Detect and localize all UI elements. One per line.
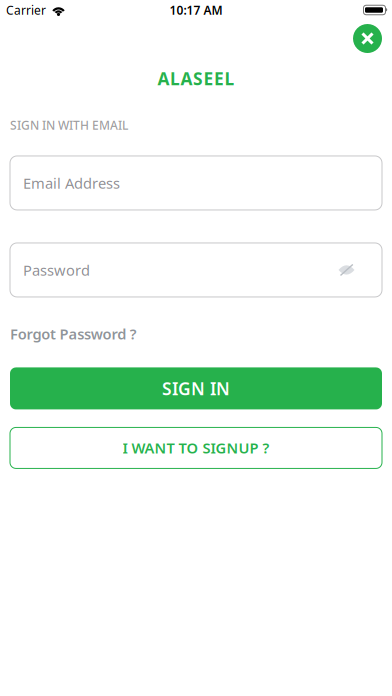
staticText: ALASEEL (157, 67, 234, 90)
button[interactable]: Password (10, 243, 382, 297)
button[interactable]: Email Address (10, 156, 382, 210)
staticText: 10:17 AM (169, 2, 222, 18)
staticText: Carrier (6, 2, 46, 18)
staticText: SIGN IN WITH EMAIL (10, 117, 128, 133)
button[interactable]: Forgot Password ? (10, 324, 392, 343)
staticText: Forgot Password ? (10, 324, 137, 343)
staticText: Email Address (23, 173, 120, 193)
staticText: I WANT TO SIGNUP ? (122, 438, 269, 458)
button[interactable]: SIGN IN (10, 367, 382, 409)
button[interactable]: Close (353, 24, 382, 53)
staticText: Password (23, 260, 90, 280)
button[interactable]: I WANT TO SIGNUP ? (10, 427, 382, 468)
staticText: SIGN IN (162, 377, 230, 400)
